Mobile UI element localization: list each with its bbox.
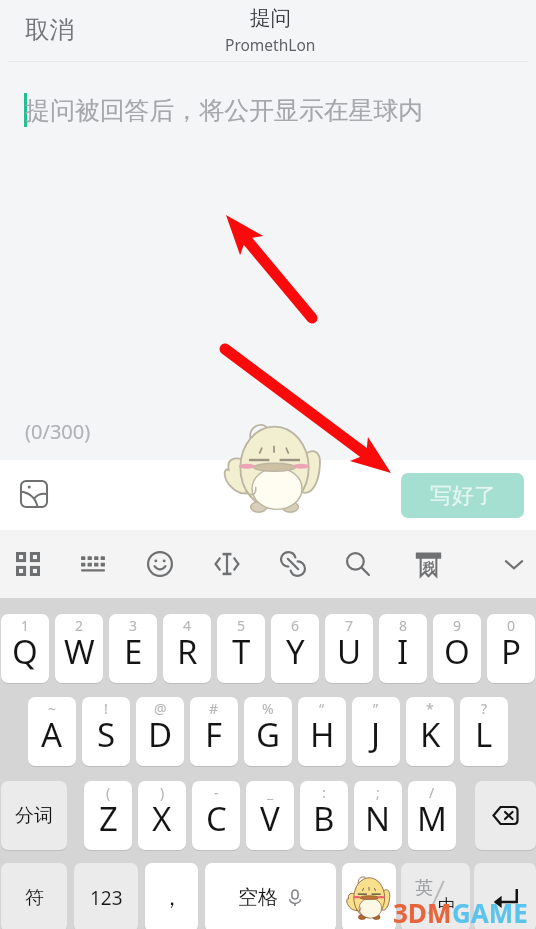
staticText: 税 xyxy=(423,559,435,574)
staticText: F xyxy=(205,712,223,757)
button[interactable]: 5 xyxy=(217,614,265,683)
staticText: ; xyxy=(376,783,380,802)
button[interactable]: 分词 xyxy=(1,781,67,850)
button[interactable]: ” xyxy=(352,697,400,766)
staticText: 8 xyxy=(399,616,408,635)
staticText: 中 xyxy=(438,895,456,918)
button[interactable]: Clipboard xyxy=(266,530,320,598)
staticText: Q xyxy=(12,629,38,674)
button[interactable]: Panels xyxy=(1,530,55,598)
staticText: S xyxy=(97,712,116,757)
staticText: GAME xyxy=(452,895,528,929)
staticText: V xyxy=(260,796,280,841)
staticText: 写好了 xyxy=(430,482,496,510)
staticText: 空格 xyxy=(238,885,278,910)
staticText: B xyxy=(313,796,335,841)
staticText: E xyxy=(124,629,143,674)
button[interactable]: * xyxy=(406,697,454,766)
staticText: A xyxy=(41,712,63,757)
button[interactable]: _ xyxy=(246,781,294,850)
button[interactable]: Select text xyxy=(200,530,254,598)
staticText: * xyxy=(426,699,434,718)
staticText: 英 xyxy=(415,877,433,900)
staticText: 取消 xyxy=(25,14,74,45)
button[interactable]: 英 xyxy=(401,863,470,929)
button[interactable]: % xyxy=(244,697,292,766)
staticText: C xyxy=(206,796,227,841)
staticText: ， xyxy=(161,884,183,912)
staticText: PromethLon xyxy=(225,34,316,55)
staticText: : xyxy=(322,783,326,802)
button[interactable]: / xyxy=(408,781,456,850)
button[interactable]: : xyxy=(300,781,348,850)
staticText: ” xyxy=(373,699,379,718)
staticText: H xyxy=(310,712,335,757)
staticText: “ xyxy=(319,699,325,718)
staticText: K xyxy=(420,712,441,757)
button[interactable]: ) xyxy=(138,781,186,850)
staticText: 1 xyxy=(21,616,30,635)
button[interactable]: ~ xyxy=(28,697,76,766)
staticText: 4 xyxy=(183,616,192,635)
staticText: ! xyxy=(104,699,108,718)
staticText: 9 xyxy=(453,616,462,635)
staticText: 3DM xyxy=(393,895,452,929)
staticText: / xyxy=(429,783,435,802)
button[interactable]: 2 xyxy=(55,614,103,683)
button[interactable]: ; xyxy=(354,781,402,850)
button[interactable]: 6 xyxy=(271,614,319,683)
button[interactable]: @ xyxy=(136,697,184,766)
staticText: 提问被回答后，将公开显示在星球内 xyxy=(25,95,424,126)
button[interactable]: Add image xyxy=(16,476,52,512)
button[interactable]: 空格 xyxy=(205,863,336,929)
staticText: ~ xyxy=(48,699,57,718)
button[interactable]: Emoji xyxy=(133,530,187,598)
staticText: U xyxy=(337,629,362,674)
staticText: 123 xyxy=(90,885,123,911)
button[interactable]: Invoice xyxy=(401,530,455,598)
staticText: - xyxy=(214,783,219,802)
button[interactable]: - xyxy=(192,781,240,850)
button[interactable]: 8 xyxy=(379,614,427,683)
staticText: X xyxy=(152,796,172,841)
staticText: R xyxy=(177,629,198,674)
staticText: 分词 xyxy=(15,804,53,828)
button[interactable]: 3 xyxy=(109,614,157,683)
button[interactable]: 写好了 xyxy=(401,473,524,518)
staticText: I xyxy=(397,629,409,674)
staticText: 符 xyxy=(25,886,44,910)
staticText: 7 xyxy=(345,616,354,635)
button[interactable]: Search xyxy=(331,530,385,598)
button[interactable]: ， xyxy=(145,863,198,929)
button[interactable]: ! xyxy=(82,697,130,766)
button[interactable]: 取消 xyxy=(11,6,88,53)
button[interactable]: Enter xyxy=(474,863,536,929)
button[interactable]: 7 xyxy=(325,614,373,683)
button[interactable]: 符 xyxy=(1,863,67,929)
button[interactable]: “ xyxy=(298,697,346,766)
button[interactable]: 4 xyxy=(163,614,211,683)
button[interactable]: 9 xyxy=(433,614,481,683)
staticText: ) xyxy=(160,783,165,802)
button[interactable]: Keyboard xyxy=(66,530,120,598)
button[interactable]: Backspace xyxy=(475,781,536,850)
staticText: _ xyxy=(267,783,274,802)
staticText: 3 xyxy=(129,616,138,635)
staticText: 6 xyxy=(291,616,300,635)
button[interactable]: ? xyxy=(460,697,508,766)
button[interactable]: Hide keyboard xyxy=(487,530,536,598)
staticText: 2 xyxy=(75,616,84,635)
staticText: % xyxy=(262,699,274,718)
staticText: G xyxy=(256,712,281,757)
staticText: ? xyxy=(481,699,488,718)
button[interactable]: 0 xyxy=(487,614,535,683)
staticText: 5 xyxy=(237,616,246,635)
button[interactable]: 1 xyxy=(1,614,49,683)
staticText: 0 xyxy=(507,616,516,635)
button[interactable]: ( xyxy=(84,781,132,850)
staticText: Z xyxy=(99,796,118,841)
button[interactable]: Sticker xyxy=(342,863,396,929)
button[interactable]: 123 xyxy=(74,863,138,929)
staticText: @ xyxy=(154,699,167,718)
button[interactable]: # xyxy=(190,697,238,766)
